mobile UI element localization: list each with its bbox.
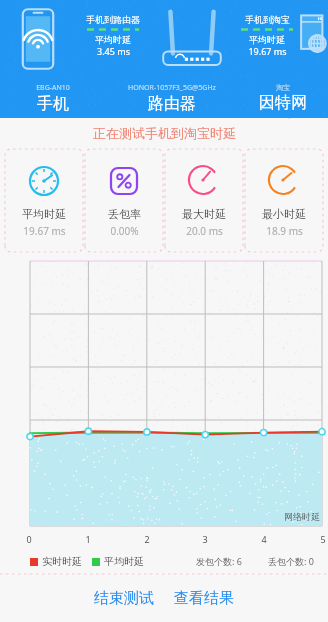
button[interactable]: 结束测试 <box>88 581 160 616</box>
button[interactable]: 查看结果 <box>168 581 240 616</box>
staticText: 18.9 ms <box>266 224 303 238</box>
staticText: 最大时延 <box>182 207 226 221</box>
staticText: 0 <box>26 533 32 545</box>
staticText: 平均时延 <box>22 207 66 221</box>
staticText: 5 <box>320 533 326 545</box>
button[interactable]: 平均时延 <box>4 148 84 253</box>
staticText: 1 <box>85 533 91 545</box>
staticText: EBG-AN10 <box>36 83 70 93</box>
staticText: 结束测试 <box>94 589 154 608</box>
button[interactable]: 最小时延 <box>244 148 324 253</box>
staticText: 3.45 ms <box>97 45 130 57</box>
staticText: 正在测试手机到淘宝时延 <box>93 125 236 141</box>
staticText: 19.67 ms <box>248 45 287 57</box>
staticText: 3 <box>202 533 208 545</box>
button[interactable]: 丢包率 <box>84 148 164 253</box>
staticText: 平均时延 <box>95 34 131 45</box>
staticText: 平均时延 <box>249 34 285 45</box>
staticText: 最小时延 <box>262 207 306 221</box>
staticText: 0.00% <box>110 224 139 238</box>
staticText: 手机到淘宝 <box>245 14 290 25</box>
staticText: 网络时延 <box>284 511 320 522</box>
staticText: 2 <box>144 533 150 545</box>
staticText: HONOR-1057F3_5G@5GHz <box>128 83 216 93</box>
staticText: 手机到路由器 <box>86 14 140 25</box>
staticText: 20.0 ms <box>186 224 223 238</box>
button[interactable]: 最大时延 <box>164 148 244 253</box>
staticText: 因特网 <box>259 93 307 113</box>
staticText: 查看结果 <box>174 589 234 608</box>
staticText: 丢包个数: 0 <box>268 555 314 567</box>
staticText: 路由器 <box>148 94 196 114</box>
staticText: 淘宝 <box>276 83 290 92</box>
staticText: 4 <box>261 533 267 545</box>
staticText: 实时时延 <box>42 555 82 568</box>
staticText: 19.67 ms <box>23 224 66 238</box>
staticText: 丢包率 <box>108 207 141 221</box>
staticText: 发包个数: 6 <box>196 555 242 567</box>
staticText: 手机 <box>37 94 69 114</box>
staticText: 平均时延 <box>104 555 144 568</box>
